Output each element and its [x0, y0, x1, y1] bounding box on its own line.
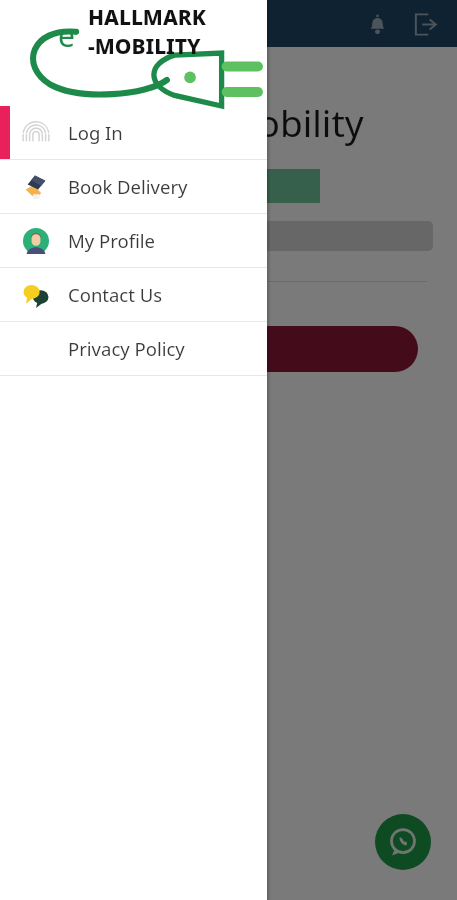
button[interactable]: Log In [0, 106, 267, 159]
staticText: My Profile [68, 228, 156, 253]
staticText: Hallmark e-Mobility [24, 97, 364, 147]
staticText: Log In [68, 120, 123, 145]
button[interactable]: Contact Us [0, 268, 267, 321]
staticText: HALLMARK [88, 3, 206, 32]
button[interactable]: Chat on WhatsApp [375, 814, 431, 870]
staticText: e [58, 15, 75, 56]
button[interactable]: Book Delivery [0, 160, 267, 213]
button[interactable]: Log out [405, 4, 445, 44]
staticText: Contact Us [68, 282, 163, 307]
staticText: Book Delivery [68, 174, 188, 199]
staticText: Privacy Policy [68, 336, 185, 361]
staticText: -MOBILITY [88, 32, 201, 61]
button[interactable]: Log Out [14, 326, 418, 372]
button[interactable]: Notifications [357, 4, 397, 44]
button[interactable]: My Profile [0, 214, 267, 267]
button[interactable]: Privacy Policy [0, 322, 267, 375]
staticText: Enter Mobile Number [26, 173, 219, 199]
button[interactable] [20, 221, 433, 251]
